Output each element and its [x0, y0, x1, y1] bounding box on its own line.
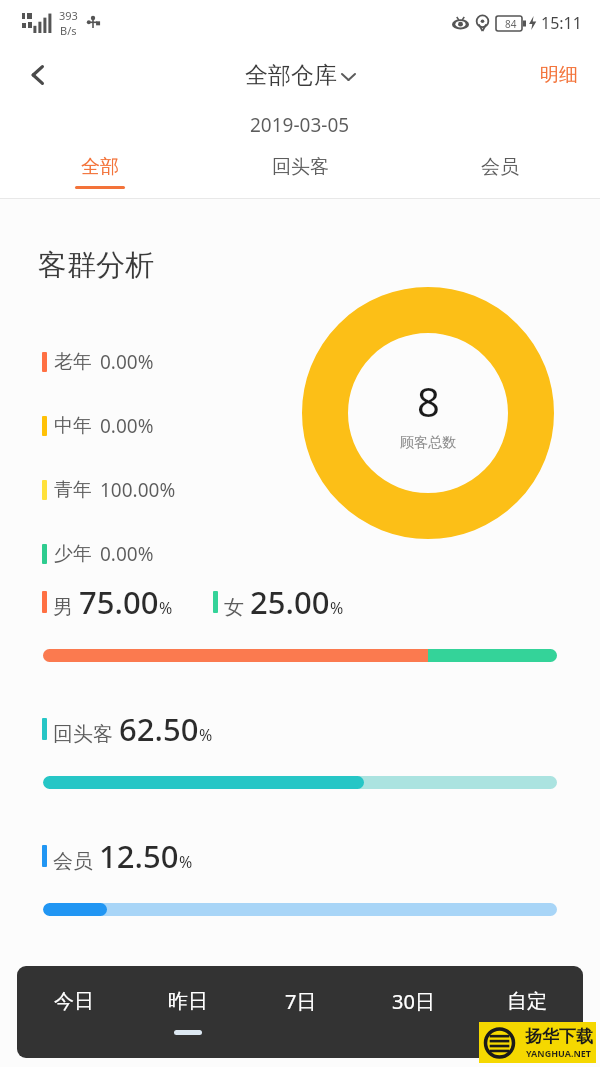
staticText: % [330, 597, 344, 619]
staticText: 15:11 [541, 12, 582, 34]
button[interactable]: Back [10, 47, 66, 103]
staticText: 0.00% [100, 413, 154, 439]
staticText: 全部 [81, 155, 119, 179]
button[interactable]: 昨日 [131, 966, 244, 1058]
staticText: 100.00% [100, 477, 176, 503]
staticText: 84 [505, 17, 517, 31]
staticText: 75.00 [79, 581, 159, 623]
staticText: 青年 [54, 478, 92, 502]
staticText: % [179, 851, 193, 873]
staticText: 回头客 [272, 155, 329, 179]
staticText: 今日 [54, 989, 94, 1014]
button[interactable]: 自定 [470, 966, 583, 1058]
staticText: 扬华下载 [525, 1026, 593, 1047]
staticText: 8 [417, 374, 440, 428]
staticText: 25.00 [250, 581, 330, 623]
button[interactable]: 全部 [0, 146, 200, 198]
staticText: 62.50 [119, 708, 199, 750]
staticText: 女 [224, 595, 244, 620]
staticText: 会员 [481, 155, 519, 179]
staticText: 明细 [540, 63, 578, 87]
staticText: 0.00% [100, 541, 154, 567]
staticText: 全部仓库 [245, 61, 337, 90]
button[interactable]: 明细 [518, 53, 600, 97]
staticText: 2019-03-05 [250, 112, 350, 138]
button[interactable]: 全部仓库 [245, 61, 355, 90]
staticText: 30日 [392, 988, 435, 1015]
staticText: 会员 [53, 849, 93, 874]
staticText: % [199, 724, 213, 746]
staticText: 12.50 [99, 835, 179, 877]
button[interactable]: 7日 [244, 966, 357, 1058]
staticText: 老年 [54, 350, 92, 374]
staticText: 男 [53, 595, 73, 620]
staticText: 少年 [54, 542, 92, 566]
staticText: 393 [59, 8, 78, 23]
staticText: 回头客 [53, 722, 113, 747]
staticText: 7日 [285, 988, 317, 1015]
button[interactable]: 今日 [17, 966, 131, 1058]
button[interactable]: 30日 [357, 966, 470, 1058]
staticText: 中年 [54, 414, 92, 438]
button[interactable]: 会员 [400, 146, 600, 198]
button[interactable]: 回头客 [200, 146, 400, 198]
staticText: 顾客总数 [400, 434, 456, 452]
staticText: B/s [60, 23, 77, 38]
staticText: % [159, 597, 173, 619]
staticText: 自定 [507, 989, 547, 1014]
staticText: 昨日 [168, 989, 208, 1014]
staticText: 客群分析 [38, 247, 154, 284]
staticText: 0.00% [100, 349, 154, 375]
staticText: YANGHUA.NET [526, 1047, 592, 1059]
